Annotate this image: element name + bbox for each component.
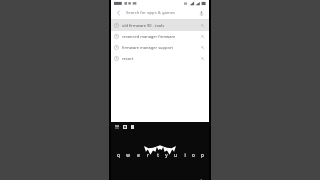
staticText: y: [165, 152, 168, 158]
button[interactable]: o: [189, 130, 198, 180]
staticText: i: [184, 152, 186, 158]
staticText: revanced manager firmware: [122, 34, 199, 39]
button[interactable]: e: [133, 130, 143, 180]
button[interactable]: r: [143, 130, 153, 180]
button[interactable]: Insert suggestion: [199, 55, 206, 62]
button[interactable]: old firmware 90 - tools: [111, 20, 209, 31]
button[interactable]: firmware manager support: [111, 42, 209, 53]
staticText: Search for apps & games: [126, 10, 196, 16]
staticText: w: [126, 152, 130, 158]
staticText: t: [157, 152, 159, 158]
button[interactable]: resort: [111, 53, 209, 64]
button[interactable]: u: [171, 130, 180, 180]
staticText: p: [201, 152, 204, 158]
button[interactable]: Insert suggestion: [199, 33, 206, 40]
button[interactable]: Voice search: [196, 8, 206, 18]
staticText: firmware manager support: [122, 45, 199, 50]
button[interactable]: Insert suggestion: [199, 22, 206, 29]
button[interactable]: Back: [114, 8, 124, 18]
button[interactable]: t: [153, 130, 162, 180]
button[interactable]: Back: [111, 7, 209, 19]
button[interactable]: y: [162, 130, 171, 180]
button[interactable]: i: [180, 130, 189, 180]
button[interactable]: Keyboard tool 2: [122, 124, 128, 130]
button[interactable]: q: [113, 130, 123, 180]
staticText: q: [117, 152, 120, 158]
staticText: o: [192, 152, 195, 158]
button[interactable]: w: [123, 130, 133, 180]
button[interactable]: Keyboard tool 3: [130, 124, 136, 130]
button[interactable]: p: [198, 130, 207, 180]
staticText: resort: [122, 56, 199, 61]
staticText: u: [174, 152, 177, 158]
button[interactable]: Keyboard tool 1: [114, 124, 120, 130]
staticText: old firmware 90 - tools: [122, 23, 199, 28]
staticText: e: [137, 152, 140, 158]
button[interactable]: Insert suggestion: [199, 44, 206, 51]
button[interactable]: revanced manager firmware: [111, 31, 209, 42]
staticText: r: [147, 152, 149, 158]
